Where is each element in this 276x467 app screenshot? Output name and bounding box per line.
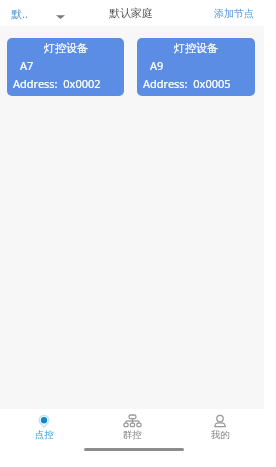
button[interactable]: 灯控设备 (137, 38, 255, 96)
button[interactable]: 我的 (176, 409, 264, 442)
other: 我的 (211, 415, 229, 427)
staticText: 默认家庭 (109, 6, 153, 20)
staticText: 默.. (11, 6, 28, 21)
staticText: 群控 (123, 429, 142, 441)
other: 群控 (124, 415, 141, 427)
other: 点控 (38, 415, 50, 427)
button[interactable]: 灯控设备 (7, 38, 124, 96)
staticText: 灯控设备 (44, 41, 88, 55)
button[interactable]: 点控 (0, 409, 88, 442)
staticText: 点控 (35, 429, 54, 441)
staticText: A9 (150, 58, 164, 73)
staticText: 我的 (211, 429, 230, 441)
button[interactable]: 群控 (88, 409, 176, 442)
button[interactable]: 添加节点 (214, 7, 254, 20)
staticText: Address: 0x0002 (13, 76, 101, 91)
staticText: A7 (20, 58, 34, 73)
staticText: 添加节点 (214, 7, 254, 20)
staticText: Address: 0x0005 (143, 76, 231, 91)
button[interactable]: 默.. (11, 6, 65, 21)
staticText: 灯控设备 (174, 41, 218, 55)
